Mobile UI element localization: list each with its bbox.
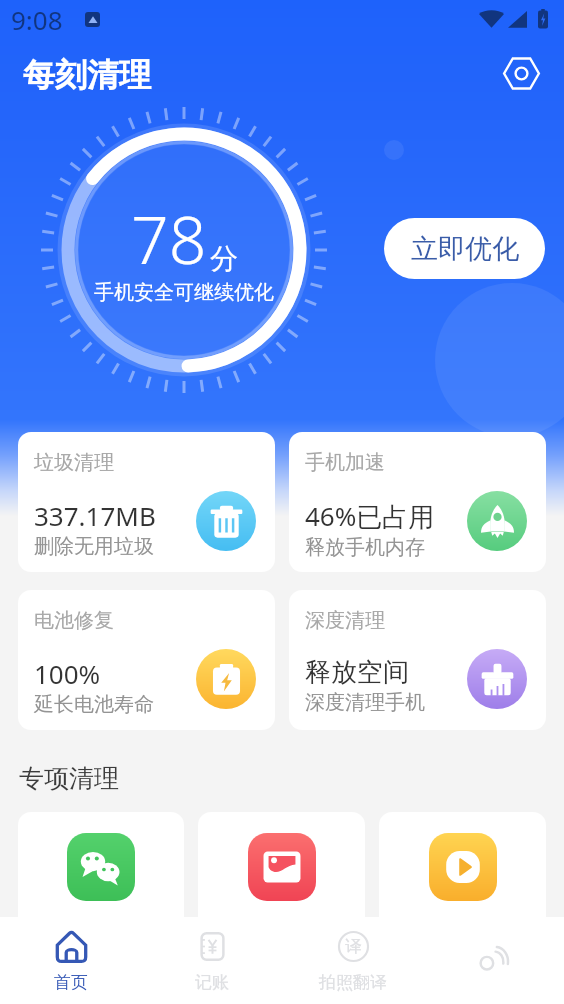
staticText: 拍照翻译 [319, 972, 387, 993]
staticText: 立即优化 [411, 232, 519, 266]
staticText: 78 [131, 193, 207, 283]
button[interactable]: 记账 [141, 917, 282, 1004]
staticText: 垃圾清理 [34, 450, 114, 475]
staticText: 100% [34, 656, 101, 691]
staticText: 深度清理手机 [305, 690, 425, 715]
staticText: 首页 [54, 972, 88, 993]
staticText: 删除无用垃圾 [34, 534, 154, 559]
staticText: 释放手机内存 [305, 535, 425, 560]
staticText: 337.17MB [34, 498, 156, 533]
button[interactable] [379, 812, 546, 942]
button[interactable]: Settings [500, 52, 542, 94]
staticText: 释放空间 [305, 656, 409, 689]
staticText: 深度清理 [305, 608, 385, 633]
staticText: 译 [345, 936, 362, 957]
button[interactable] [18, 812, 184, 942]
staticText: 延长电池寿命 [34, 692, 154, 717]
staticText: 专项清理 [19, 763, 119, 794]
button[interactable]: 译 [282, 917, 423, 1004]
staticText: 手机加速 [305, 450, 385, 475]
button[interactable]: 深度清理 [289, 590, 546, 730]
button[interactable]: 首页 [0, 917, 141, 1004]
button[interactable]: 电池修复 [18, 590, 275, 730]
staticText: 9:08 [11, 2, 63, 37]
button[interactable]: Voice assistant [423, 917, 564, 1004]
staticText: 46%已占用 [305, 498, 435, 534]
staticText: 手机安全可继续优化 [94, 280, 274, 305]
button[interactable] [198, 812, 365, 942]
staticText: 记账 [195, 972, 229, 993]
button[interactable]: 立即优化 [384, 218, 545, 279]
button[interactable]: 垃圾清理 [18, 432, 275, 572]
staticText: 电池修复 [34, 608, 114, 633]
staticText: 每刻清理 [23, 55, 151, 95]
button[interactable]: 手机加速 [289, 432, 546, 572]
staticText: 分 [210, 241, 238, 276]
